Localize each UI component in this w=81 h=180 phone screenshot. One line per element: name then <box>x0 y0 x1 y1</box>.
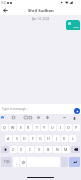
button[interactable]: Backspace <box>71 146 80 153</box>
button[interactable]: P <box>73 124 80 131</box>
staticText: Shril Sudhan <box>28 8 54 14</box>
button[interactable]: Back <box>1 6 9 14</box>
button[interactable]: Shift <box>1 146 9 153</box>
button[interactable]: Y <box>41 124 48 131</box>
staticText: Type a message... <box>2 107 29 111</box>
staticText: 10:30 <box>73 26 79 29</box>
staticText: J <box>56 136 57 141</box>
staticText: Apr 14, 2024 <box>0 17 81 21</box>
button[interactable]: I <box>57 124 64 131</box>
staticText: F <box>32 136 34 141</box>
button[interactable]: Google <box>1 116 4 119</box>
staticText: Hi <box>68 22 72 26</box>
button[interactable]: Keyboard tool <box>12 116 15 119</box>
staticText: P <box>75 125 78 130</box>
staticText: , <box>16 160 17 165</box>
button[interactable]: T <box>33 124 40 131</box>
button[interactable]: M <box>62 146 70 153</box>
button[interactable]: V <box>35 146 43 153</box>
button[interactable]: Voice input <box>72 116 76 120</box>
staticText: X <box>20 147 23 152</box>
button[interactable]: U <box>49 124 56 131</box>
button[interactable]: Hi <box>66 20 80 30</box>
staticText: G <box>39 136 42 141</box>
button[interactable]: D <box>21 135 28 142</box>
button[interactable]: G <box>37 135 44 142</box>
button[interactable]: Keyboard tool <box>46 116 49 119</box>
button[interactable]: N <box>53 146 61 153</box>
button[interactable]: Enter <box>69 157 80 167</box>
staticText: V <box>38 147 41 152</box>
staticText: L <box>72 136 74 141</box>
staticText: Y <box>43 125 46 130</box>
staticText: K <box>63 136 66 141</box>
button[interactable]: H <box>45 135 52 142</box>
button[interactable]: F <box>29 135 36 142</box>
button[interactable]: Q <box>1 124 8 131</box>
staticText: T <box>36 125 38 130</box>
button[interactable]: Keyboard tool <box>37 116 40 119</box>
button[interactable]: S <box>13 135 20 142</box>
button[interactable]: , <box>13 157 19 167</box>
staticText: B <box>47 147 50 152</box>
staticText: ?123 <box>4 160 10 164</box>
button[interactable]: O <box>65 124 72 131</box>
staticText: 9:41 <box>1 1 7 5</box>
button[interactable]: Z <box>10 146 17 153</box>
staticText: N <box>56 147 59 152</box>
button[interactable]: W <box>9 124 16 131</box>
staticText: I <box>60 125 62 130</box>
button[interactable]: Emoji <box>20 157 26 167</box>
staticText: . <box>64 160 65 165</box>
staticText: Q <box>3 125 6 130</box>
button[interactable]: Keyboard tool <box>29 116 32 119</box>
staticText: D <box>23 136 26 141</box>
staticText: U <box>51 125 54 130</box>
staticText: H <box>47 136 50 141</box>
button[interactable]: J <box>53 135 60 142</box>
button[interactable]: E <box>17 124 24 131</box>
staticText: R <box>27 125 30 130</box>
staticText: Z <box>12 147 15 152</box>
button[interactable]: B <box>44 146 52 153</box>
staticText: O <box>67 125 70 130</box>
button[interactable]: K <box>61 135 68 142</box>
button[interactable]: R <box>25 124 32 131</box>
button[interactable]: More options <box>62 116 66 119</box>
button[interactable]: Send <box>74 108 80 114</box>
button[interactable]: A <box>5 135 12 142</box>
button[interactable]: X <box>18 146 25 153</box>
staticText: W <box>11 125 15 130</box>
staticText: E <box>20 125 22 130</box>
button[interactable]: ?123 <box>1 157 12 167</box>
staticText: C <box>29 147 32 152</box>
staticText: A <box>7 136 10 141</box>
button[interactable]: GIF <box>24 116 28 119</box>
staticText: S <box>16 136 18 141</box>
staticText: G <box>2 116 4 119</box>
button[interactable]: L <box>69 135 76 142</box>
button[interactable]: C <box>26 146 34 153</box>
staticText: M <box>64 147 68 152</box>
